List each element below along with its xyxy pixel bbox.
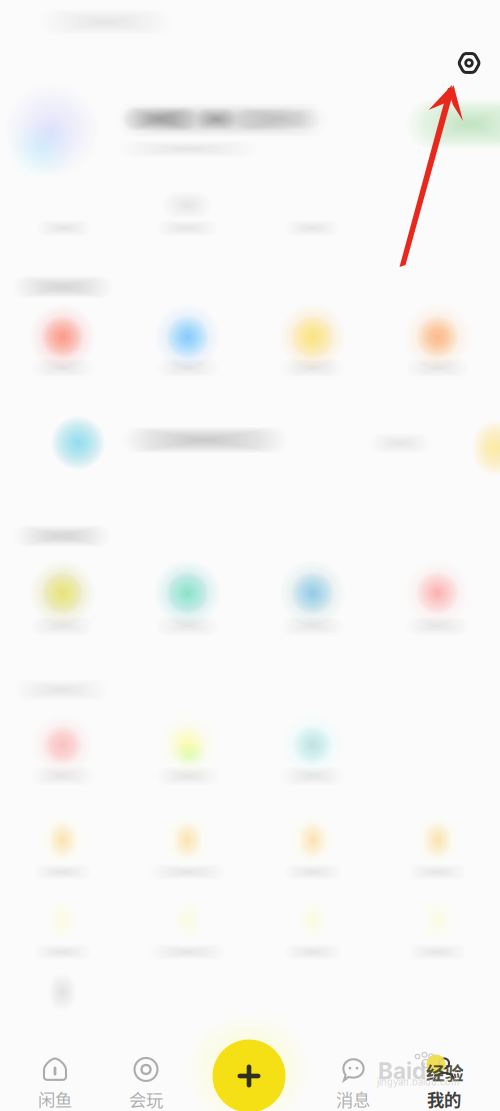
staticText: jingyan.baidu.com bbox=[377, 1076, 459, 1088]
staticText: Baidu bbox=[378, 1057, 440, 1085]
button[interactable] bbox=[12, 816, 112, 892]
button[interactable]: 消息 bbox=[307, 1056, 399, 1111]
button[interactable]: 会玩 bbox=[100, 1056, 192, 1111]
button[interactable] bbox=[0, 553, 125, 666]
button[interactable] bbox=[0, 297, 125, 408]
button[interactable] bbox=[262, 896, 362, 972]
button[interactable] bbox=[137, 896, 237, 972]
button[interactable] bbox=[375, 297, 500, 408]
button[interactable]: Post bbox=[212, 1039, 285, 1111]
button[interactable] bbox=[137, 816, 237, 892]
button[interactable] bbox=[387, 816, 487, 892]
button[interactable] bbox=[0, 705, 125, 816]
button[interactable] bbox=[125, 297, 250, 408]
button[interactable] bbox=[250, 553, 375, 666]
button[interactable]: 我的 bbox=[398, 1056, 490, 1111]
button[interactable] bbox=[12, 896, 112, 972]
button[interactable] bbox=[375, 553, 500, 666]
staticText: 消息 bbox=[336, 1086, 370, 1111]
button[interactable]: 闲鱼 bbox=[9, 1056, 101, 1111]
button[interactable] bbox=[12, 968, 112, 1044]
button[interactable] bbox=[250, 705, 375, 816]
button[interactable] bbox=[125, 553, 250, 666]
button[interactable] bbox=[250, 297, 375, 408]
staticText: 经验 bbox=[426, 1058, 464, 1085]
button[interactable] bbox=[262, 816, 362, 892]
staticText: 我的 bbox=[427, 1086, 461, 1111]
button[interactable]: Settings bbox=[447, 41, 491, 85]
button[interactable] bbox=[387, 896, 487, 972]
staticText: 会玩 bbox=[129, 1086, 163, 1111]
staticText: 闲鱼 bbox=[38, 1086, 72, 1111]
button[interactable] bbox=[125, 705, 250, 816]
